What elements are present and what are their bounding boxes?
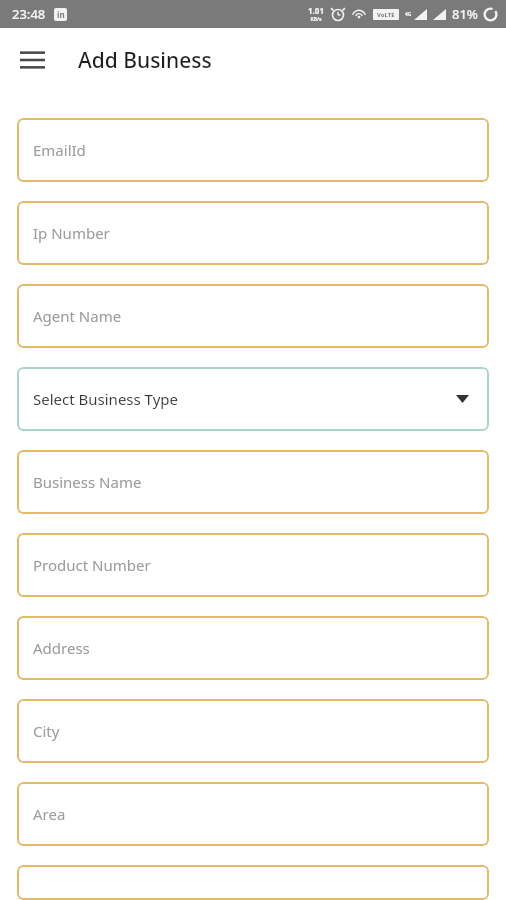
button[interactable]: Area (17, 782, 489, 846)
button[interactable]: Business Name (17, 450, 489, 514)
button[interactable]: Address (17, 616, 489, 680)
staticText: Business Name (33, 472, 142, 492)
staticText: Ip Number (33, 223, 110, 243)
staticText: 23:48 (12, 5, 46, 23)
staticText: Agent Name (33, 306, 122, 326)
button[interactable]: Agent Name (17, 284, 489, 348)
staticText: KB/s (310, 16, 322, 23)
staticText: EmailId (33, 140, 86, 160)
button[interactable]: City (17, 699, 489, 763)
staticText: Add Business (78, 46, 212, 75)
staticText: 81% (452, 5, 478, 23)
staticText: Area (33, 804, 66, 824)
staticText: VoLTE (377, 11, 395, 19)
button[interactable] (17, 865, 489, 900)
staticText: in (57, 9, 65, 20)
button[interactable]: Ip Number (17, 201, 489, 265)
staticText: Select Business Type (33, 389, 178, 409)
staticText: 4G (405, 11, 412, 18)
button[interactable]: Select Business Type (17, 367, 489, 431)
staticText: Product Number (33, 555, 151, 575)
button[interactable]: Product Number (17, 533, 489, 597)
button[interactable]: Open navigation menu (10, 38, 54, 82)
staticText: Address (33, 638, 90, 658)
button[interactable]: EmailId (17, 118, 489, 182)
staticText: 1.01 (308, 5, 324, 16)
staticText: City (33, 721, 60, 741)
